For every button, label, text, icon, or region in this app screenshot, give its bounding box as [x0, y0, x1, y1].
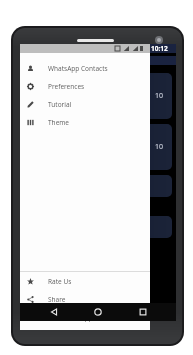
button[interactable]: 10: [90, 124, 172, 170]
staticText: Share: [48, 295, 66, 304]
staticText: Theme: [48, 118, 70, 127]
button[interactable]: Tutorial: [20, 95, 150, 113]
staticText: Rate Us: [48, 277, 72, 286]
button[interactable]: Preferences: [20, 77, 150, 95]
button[interactable]: Recent apps: [132, 303, 154, 321]
button[interactable]: Rate Us: [20, 272, 150, 290]
staticText: Preferences: [48, 82, 85, 91]
staticText: 10:12: [151, 44, 168, 53]
button[interactable]: Theme: [20, 113, 150, 131]
button[interactable]: Share: [20, 290, 150, 308]
button[interactable]: More Free Apps: [20, 308, 150, 326]
staticText: More Free Apps: [48, 313, 96, 322]
button[interactable]: Back: [43, 303, 65, 321]
button[interactable]: [90, 216, 172, 238]
staticText: WhatsApp Contacts: [48, 64, 108, 73]
button[interactable]: [90, 175, 172, 197]
button[interactable]: Home: [87, 303, 109, 321]
staticText: Tutorial: [48, 100, 72, 109]
staticText: 10: [155, 91, 164, 101]
button[interactable]: WhatsApp Contacts: [20, 59, 150, 77]
staticText: 10: [155, 142, 164, 152]
button[interactable]: 10: [90, 73, 172, 119]
